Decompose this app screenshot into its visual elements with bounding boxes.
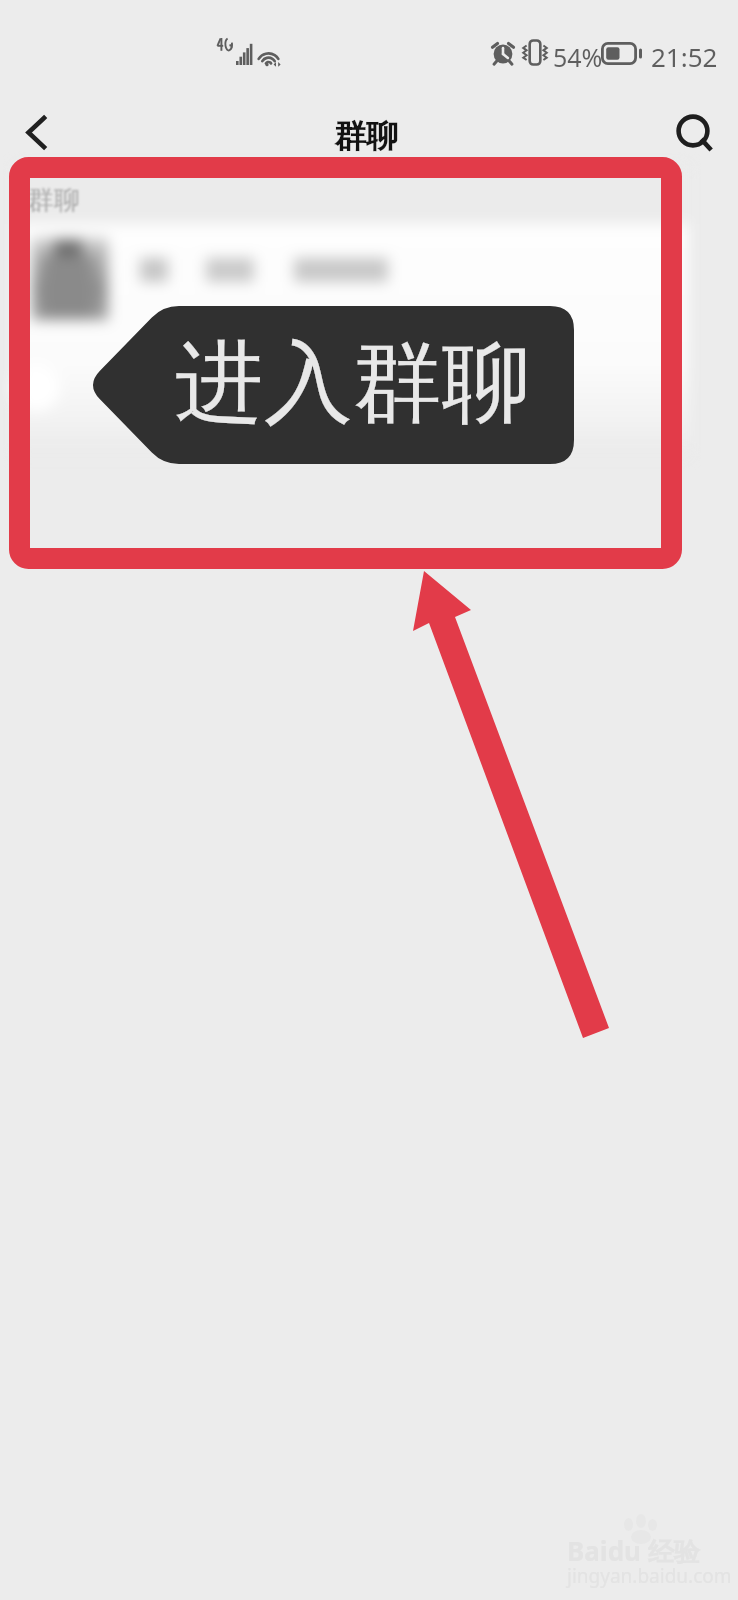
staticText: 21:52 bbox=[651, 39, 718, 74]
staticText: 进入群聊 bbox=[175, 327, 531, 439]
button[interactable]: Search bbox=[662, 90, 738, 176]
button[interactable]: 进入群聊 bbox=[20, 226, 668, 431]
staticText: jingyan.baidu.com bbox=[567, 1563, 732, 1589]
staticText: Baidu 经验 bbox=[567, 1533, 700, 1569]
staticText: 群聊 bbox=[334, 116, 398, 156]
staticText: 群聊 bbox=[28, 184, 80, 217]
staticText: 54% bbox=[553, 40, 603, 74]
button[interactable]: Back bbox=[0, 90, 76, 176]
